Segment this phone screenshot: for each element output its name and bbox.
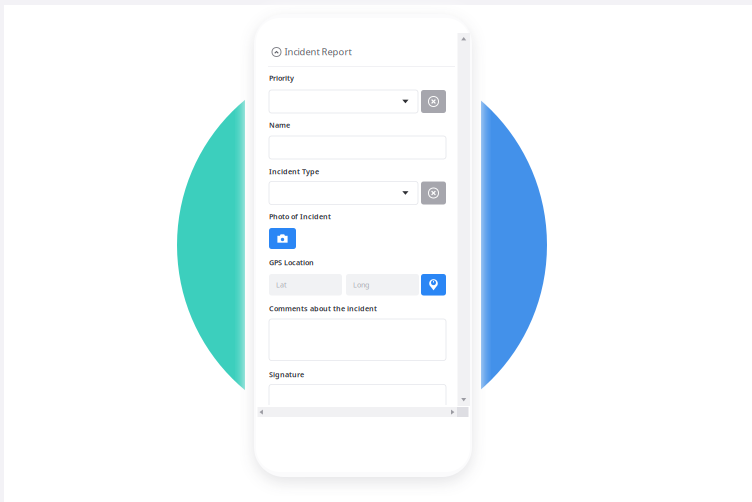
staticText: Lat: [276, 280, 287, 290]
staticText: GPS Location: [269, 257, 314, 267]
staticText: Signature: [269, 369, 304, 379]
button[interactable]: Get current GPS location: [421, 274, 446, 295]
staticText: Priority: [269, 73, 294, 83]
button[interactable]: Clear field: [421, 90, 446, 113]
staticText: Comments about the incident: [269, 303, 377, 313]
button[interactable]: Take photo of incident: [269, 228, 296, 249]
staticText: Photo of Incident: [269, 211, 331, 221]
staticText: Name: [269, 120, 290, 130]
button[interactable]: Clear field: [421, 181, 446, 204]
staticText: Incident Report: [284, 45, 351, 58]
staticText: Long: [353, 280, 369, 290]
button[interactable]: Collapse Incident Report section: [272, 47, 281, 56]
staticText: Incident Type: [269, 166, 319, 176]
